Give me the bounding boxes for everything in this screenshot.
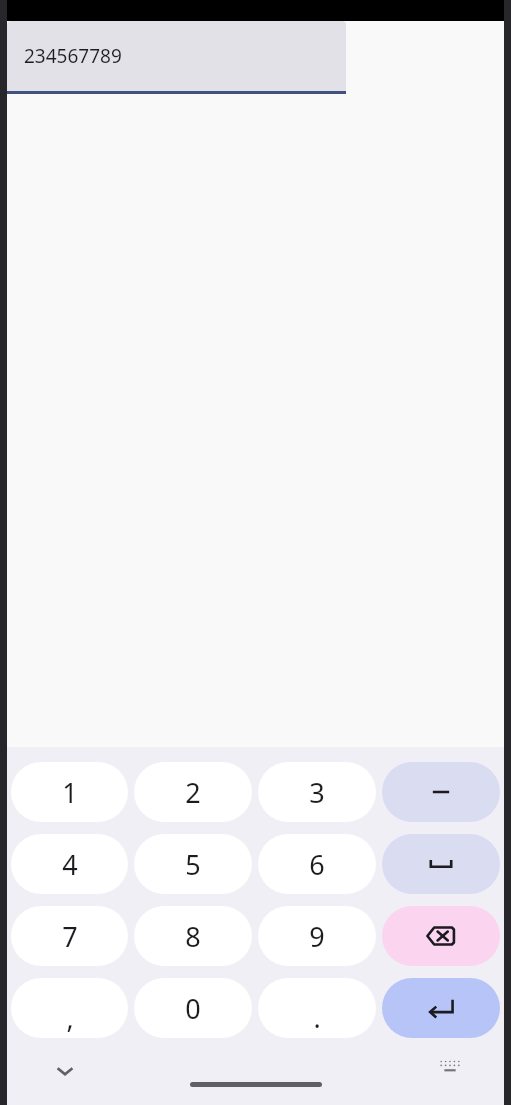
staticText: 5 (185, 846, 201, 883)
staticText: 234567789 (24, 43, 122, 69)
button[interactable]: 4 (11, 834, 128, 894)
button[interactable]: 0 (134, 978, 252, 1038)
button[interactable]: Enter (382, 978, 500, 1038)
button[interactable]: 1 (11, 762, 128, 822)
button[interactable]: 9 (258, 906, 376, 966)
button[interactable]: 2 (134, 762, 252, 822)
staticText: 2 (185, 774, 201, 811)
button[interactable]: 6 (258, 834, 376, 894)
button[interactable]: 7 (11, 906, 128, 966)
button[interactable]: Hide keyboard (43, 1049, 87, 1093)
button[interactable]: 3 (258, 762, 376, 822)
button[interactable]: Switch keyboard (430, 1045, 470, 1085)
staticText: 8 (185, 918, 201, 955)
staticText: 3 (309, 774, 325, 811)
staticText: 7 (62, 918, 78, 955)
staticText: 6 (309, 846, 325, 883)
staticText: 4 (62, 846, 78, 883)
staticText: . (313, 999, 321, 1036)
button[interactable]: Minus (382, 762, 500, 822)
button[interactable]: Backspace (382, 906, 500, 966)
button[interactable]: 5 (134, 834, 252, 894)
button[interactable]: 8 (134, 906, 252, 966)
button[interactable]: . (258, 978, 376, 1038)
button[interactable]: , (11, 978, 128, 1038)
staticText: 0 (185, 990, 201, 1027)
staticText: , (66, 999, 74, 1036)
staticText: 1 (62, 774, 78, 811)
button[interactable]: Space (382, 834, 500, 894)
staticText: 9 (309, 918, 325, 955)
button[interactable]: 234567789 (7, 21, 346, 95)
